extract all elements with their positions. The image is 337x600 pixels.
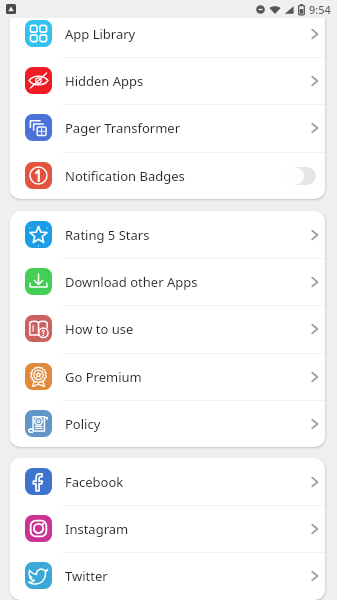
button[interactable]: Twitter [10,552,325,599]
staticText: App Library [65,25,136,43]
other: Open [310,228,322,242]
other: Open [310,275,322,289]
staticText: Policy [65,415,101,433]
other: Open [310,74,322,88]
staticText: Facebook [65,473,124,491]
other: Open [310,475,322,489]
staticText: Download other Apps [65,273,198,291]
button[interactable]: Policy [10,400,325,447]
other: Open [310,522,322,536]
other: Open [310,27,322,41]
staticText: Instagram [65,520,129,538]
button[interactable]: Notification Badges [10,152,325,199]
button[interactable]: Instagram [10,505,325,552]
staticText: Hidden Apps [65,72,144,90]
staticText: Twitter [65,567,108,585]
staticText: 9:54 [309,2,331,17]
staticText: Pager Transformer [65,119,181,137]
other: Open [310,370,322,384]
button[interactable]: How to use [10,305,325,352]
button[interactable]: Pager Transformer [10,104,325,151]
other: Open [310,121,322,135]
other: Open [310,569,322,583]
staticText: How to use [65,320,134,338]
staticText: Go Premium [65,368,142,386]
button[interactable]: Facebook [10,458,325,505]
staticText: Notification Badges [65,167,185,185]
button[interactable]: Hidden Apps [10,57,325,104]
button[interactable]: Download other Apps [10,258,325,305]
button[interactable]: App Library [10,10,325,57]
button[interactable]: Rating 5 Stars [10,211,325,258]
other: Open [310,417,322,431]
other: Open [310,322,322,336]
button[interactable]: Go Premium [10,353,325,400]
staticText: Rating 5 Stars [65,226,150,244]
button[interactable]: Notification badges toggle [286,164,322,188]
